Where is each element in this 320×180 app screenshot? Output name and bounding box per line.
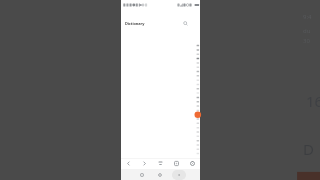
button[interactable]: Recents <box>135 170 149 180</box>
button[interactable]: Home <box>153 170 167 180</box>
staticText: D <box>303 139 314 159</box>
button[interactable]: Back <box>172 170 186 180</box>
button[interactable]: Alphabet index <box>193 43 200 155</box>
staticText: Dictionary <box>125 21 145 26</box>
staticText: 16 <box>306 91 320 111</box>
button[interactable]: Back <box>121 158 136 169</box>
button[interactable]: Forward <box>136 158 152 169</box>
staticText: 30 <box>303 37 310 45</box>
staticText: 9:4 <box>303 13 312 21</box>
button[interactable]: Tabs <box>168 158 184 169</box>
button[interactable]: Search <box>181 19 190 28</box>
button[interactable]: Settings <box>184 158 200 169</box>
button[interactable]: Home <box>152 158 168 169</box>
staticText: du <box>303 27 311 35</box>
